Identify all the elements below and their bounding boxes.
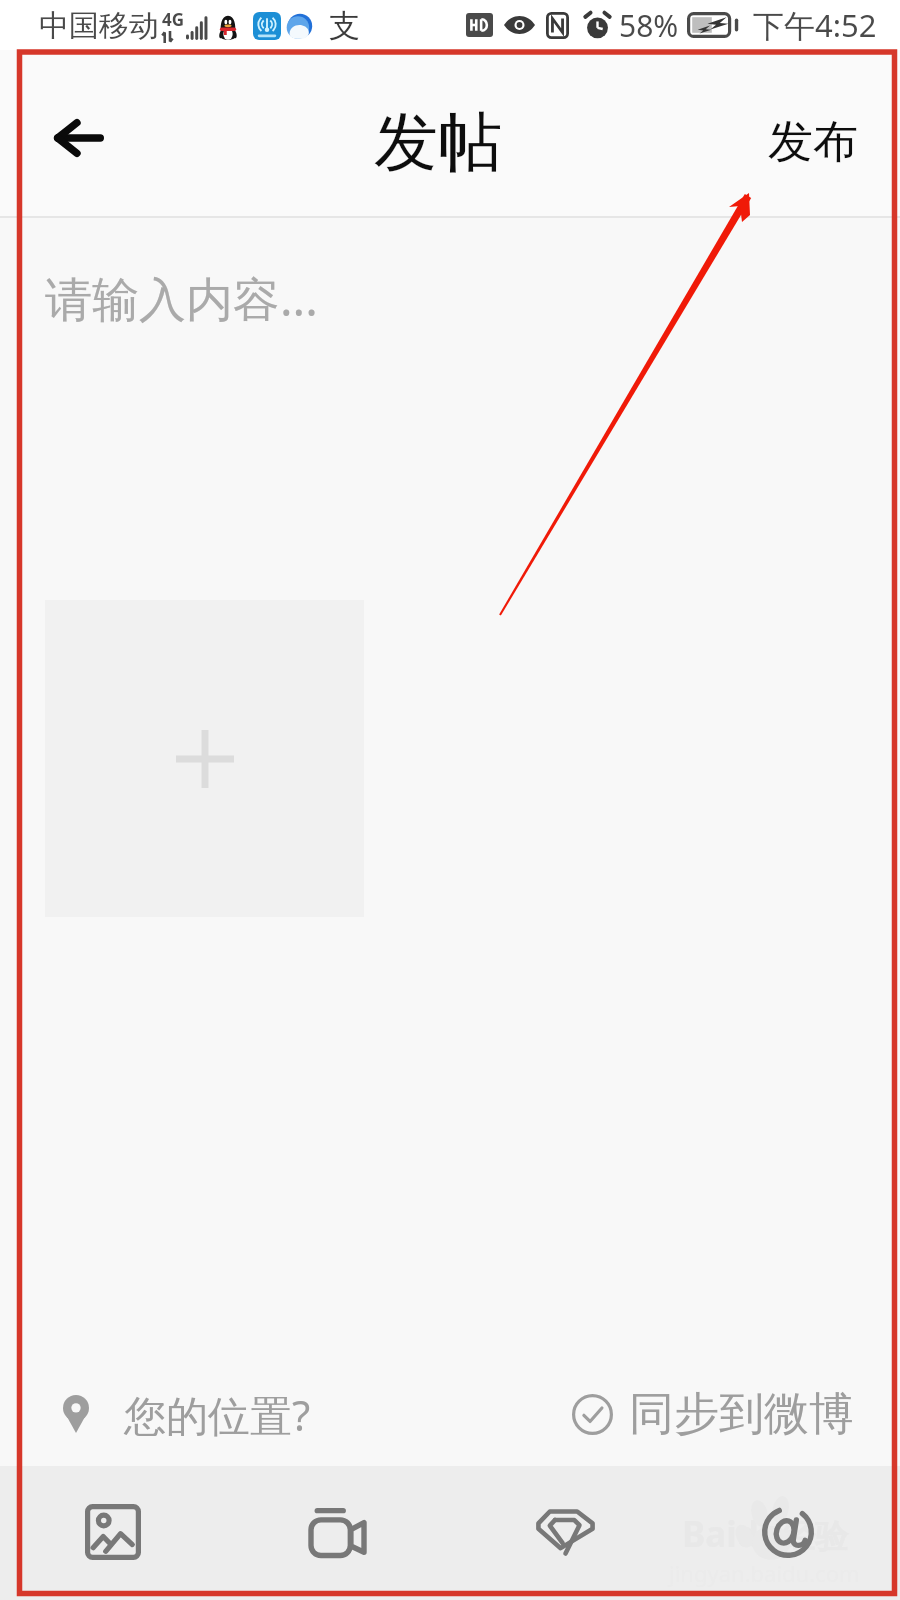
staticText: 您的位置?: [124, 1386, 311, 1443]
button[interactable]: 同步到微博: [572, 1362, 854, 1466]
staticText: 经验: [782, 1516, 848, 1558]
staticText: 中国移动: [39, 7, 159, 45]
staticText: 发布: [768, 114, 858, 171]
staticText: 下午4:52: [753, 4, 877, 46]
button[interactable]: 话题: [453, 1466, 678, 1597]
button[interactable]: 提到: [675, 1466, 900, 1597]
button[interactable]: 发布: [756, 100, 870, 185]
staticText: 58%: [619, 5, 679, 46]
staticText: 4G: [162, 8, 185, 31]
button[interactable]: 图片: [0, 1466, 225, 1597]
staticText: 发帖: [374, 102, 502, 183]
button[interactable]: 视频: [225, 1466, 450, 1597]
button[interactable]: 返回: [26, 85, 132, 191]
staticText: 支: [329, 6, 360, 45]
staticText: 请输入内容...: [45, 266, 318, 330]
staticText: Baidu: [682, 1510, 782, 1558]
staticText: 同步到微博: [629, 1386, 854, 1443]
button[interactable]: 您的位置?: [40, 1362, 572, 1466]
